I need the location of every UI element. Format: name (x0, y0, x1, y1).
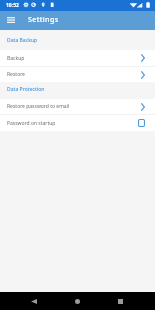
button[interactable]: Recent apps (86, 292, 155, 310)
button[interactable]: Restore (0, 67, 155, 82)
button[interactable]: Restore password to email (0, 99, 155, 114)
staticText: Backup (7, 55, 25, 62)
staticText: Restore (7, 71, 25, 78)
button[interactable]: Password on startup (0, 115, 155, 131)
staticText: 10:52 (6, 2, 19, 9)
staticText: Data Protection (7, 86, 45, 93)
staticText: Data Backup (7, 37, 38, 44)
button[interactable]: Back (0, 292, 68, 310)
staticText: Restore password to email (7, 103, 70, 110)
staticText: Settings (28, 15, 59, 25)
staticText: Password on startup (7, 120, 56, 127)
button[interactable]: Backup (0, 50, 155, 66)
button[interactable]: Home (68, 292, 86, 310)
button[interactable]: Open navigation menu (0, 11, 22, 30)
